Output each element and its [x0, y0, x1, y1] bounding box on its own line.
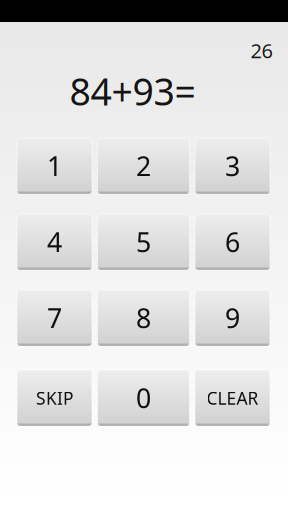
- staticText: 26: [250, 37, 272, 64]
- staticText: 8: [136, 300, 151, 336]
- button[interactable]: 5: [97, 214, 189, 270]
- button[interactable]: 4: [17, 214, 92, 270]
- button[interactable]: 0: [97, 370, 189, 426]
- staticText: 9: [225, 300, 240, 336]
- button[interactable]: 8: [97, 290, 189, 346]
- staticText: 1: [47, 148, 62, 184]
- button[interactable]: 3: [195, 138, 270, 194]
- staticText: 0: [136, 380, 151, 416]
- button[interactable]: CLEAR: [195, 370, 270, 426]
- staticText: 7: [47, 300, 62, 336]
- staticText: CLEAR: [206, 386, 258, 409]
- staticText: 84+93=: [69, 66, 195, 116]
- staticText: 2: [136, 148, 151, 184]
- button[interactable]: 9: [195, 290, 270, 346]
- button[interactable]: 1: [17, 138, 92, 194]
- staticText: 4: [47, 224, 62, 260]
- button[interactable]: 2: [97, 138, 189, 194]
- button[interactable]: 6: [195, 214, 270, 270]
- staticText: 3: [225, 148, 240, 184]
- button[interactable]: 7: [17, 290, 92, 346]
- staticText: 5: [136, 224, 151, 260]
- staticText: 6: [225, 224, 240, 260]
- button[interactable]: SKIP: [17, 370, 92, 426]
- staticText: SKIP: [36, 386, 73, 409]
